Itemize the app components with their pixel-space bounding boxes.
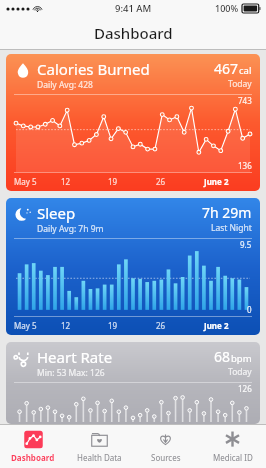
staticText: 19: [108, 176, 156, 187]
staticText: 0: [247, 304, 252, 315]
staticText: Dashboard: [11, 452, 55, 463]
staticText: Last Night: [211, 222, 252, 234]
staticText: Health Data: [77, 452, 122, 463]
staticText: Sources: [151, 452, 181, 463]
staticText: 743: [238, 95, 252, 106]
button[interactable]: Calories Burned: [6, 54, 260, 191]
staticText: 12: [61, 320, 108, 331]
button[interactable]: Sleep: [6, 198, 260, 335]
staticText: Heart Rate: [37, 347, 113, 367]
staticText: 9:41 AM: [115, 2, 152, 15]
staticText: May 5: [14, 176, 61, 187]
staticText: Daily Avg: 7h 9m: [37, 223, 104, 235]
staticText: Today: [228, 78, 252, 90]
staticText: May 5: [14, 320, 61, 331]
staticText: 7h 29m: [202, 203, 252, 222]
staticText: Sleep: [37, 203, 76, 223]
staticText: 9.5: [240, 239, 252, 250]
staticText: 100%: [215, 2, 239, 14]
staticText: 126: [238, 383, 252, 394]
staticText: Today: [228, 366, 252, 378]
staticText: Min: 53 Max: 126: [37, 367, 105, 379]
staticText: June 2: [204, 320, 252, 331]
staticText: cal: [239, 64, 252, 77]
staticText: 467: [214, 59, 239, 78]
staticText: Daily Avg: 428: [37, 79, 93, 91]
button[interactable]: Heart Rate: [6, 342, 260, 424]
staticText: bpm: [231, 352, 252, 365]
staticText: 19: [108, 320, 156, 331]
button[interactable]: Health Data: [66, 425, 132, 468]
staticText: Medical ID: [213, 452, 253, 463]
button[interactable]: Sources: [132, 425, 199, 468]
staticText: Calories Burned: [37, 59, 150, 79]
staticText: 68: [214, 347, 231, 366]
staticText: 12: [61, 176, 108, 187]
staticText: Dashboard: [94, 23, 173, 43]
button[interactable]: Dashboard: [0, 425, 66, 468]
button[interactable]: Medical ID: [199, 425, 266, 468]
staticText: 26: [156, 320, 204, 331]
staticText: 136: [238, 160, 252, 171]
staticText: 26: [156, 176, 204, 187]
staticText: June 2: [204, 176, 252, 187]
